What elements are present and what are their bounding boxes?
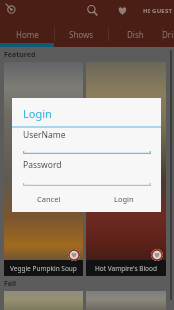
button[interactable]: HI GUEST — [138, 0, 174, 21]
button[interactable]: Favorites — [112, 0, 132, 21]
staticText: UserName — [23, 129, 66, 141]
button[interactable] — [86, 291, 166, 310]
button[interactable]: Hot Vampire's Blood — [86, 62, 166, 276]
staticText: HI GUEST — [143, 7, 173, 15]
staticText: Fall — [4, 279, 17, 289]
staticText: Password — [23, 159, 62, 171]
button[interactable]: Cancel — [12, 186, 86, 212]
staticText: Veggie Pumpkin Soup — [10, 264, 77, 273]
button[interactable]: Drinks — [162, 21, 174, 47]
button[interactable]: Veggie Pumpkin Soup — [4, 62, 83, 276]
staticText: Login — [23, 106, 52, 121]
staticText: Cancel — [37, 194, 61, 204]
staticText: Dish — [127, 29, 144, 40]
button[interactable]: Login — [86, 186, 161, 212]
button[interactable]: Shows — [54, 21, 108, 47]
staticText: Featured — [4, 50, 36, 60]
staticText: Home — [16, 29, 39, 40]
button[interactable]: Search — [81, 0, 103, 21]
button[interactable]: Favorite — [68, 249, 80, 261]
staticText: Hot Vampire's Blood — [95, 264, 157, 273]
staticText: Login — [114, 194, 134, 204]
staticText: Drinks — [162, 29, 174, 40]
button[interactable] — [4, 291, 83, 310]
staticText: Shows — [69, 29, 94, 40]
button[interactable]: Home — [0, 21, 54, 47]
button[interactable]: Favorite — [151, 249, 163, 261]
button[interactable]: Dish — [108, 21, 162, 47]
